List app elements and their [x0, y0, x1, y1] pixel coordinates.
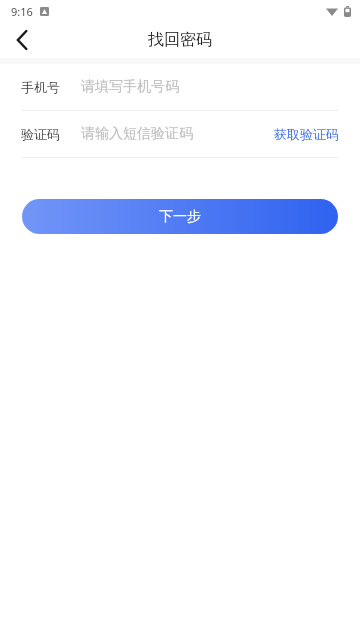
- button[interactable]: 手机号: [0, 64, 360, 110]
- button[interactable]: 验证码: [0, 111, 360, 157]
- staticText: 手机号: [21, 79, 60, 95]
- staticText: 获取验证码: [274, 126, 339, 142]
- button[interactable]: 获取验证码: [266, 122, 339, 146]
- staticText: 请填写手机号码: [81, 78, 179, 96]
- staticText: 9:16: [11, 4, 33, 19]
- staticText: 找回密码: [148, 30, 212, 50]
- button[interactable]: 下一步: [22, 199, 338, 234]
- button[interactable]: Back: [0, 22, 44, 58]
- staticText: 验证码: [21, 126, 60, 142]
- staticText: 请输入短信验证码: [81, 125, 193, 143]
- staticText: 下一步: [159, 208, 201, 226]
